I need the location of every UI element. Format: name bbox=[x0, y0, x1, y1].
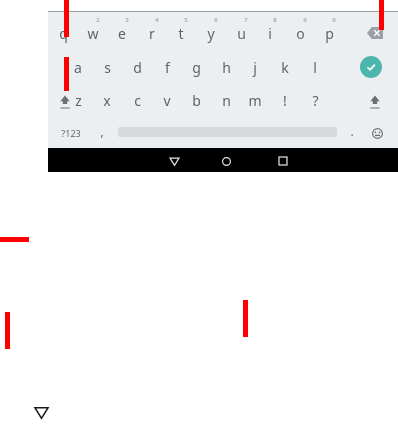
button[interactable]: n bbox=[212, 90, 240, 110]
button[interactable]: Back bbox=[167, 154, 181, 168]
staticText: s bbox=[104, 58, 111, 77]
staticText: 7 bbox=[244, 16, 248, 24]
staticText: 2 bbox=[96, 16, 100, 24]
button[interactable]: i bbox=[256, 23, 284, 43]
staticText: ! bbox=[283, 91, 287, 110]
button[interactable]: g bbox=[182, 57, 210, 77]
button[interactable]: Enter bbox=[360, 56, 382, 78]
staticText: l bbox=[313, 58, 317, 77]
staticText: o bbox=[296, 24, 305, 43]
staticText: 9 bbox=[303, 16, 307, 24]
button[interactable]: m bbox=[241, 90, 269, 110]
staticText: 5 bbox=[184, 16, 188, 24]
staticText: , bbox=[100, 123, 104, 139]
button[interactable]: y bbox=[197, 23, 225, 43]
staticText: y bbox=[207, 24, 215, 43]
staticText: 1 bbox=[66, 16, 70, 24]
staticText: 8 bbox=[273, 16, 277, 24]
button[interactable]: o bbox=[286, 23, 314, 43]
staticText: u bbox=[237, 24, 246, 43]
button[interactable]: ?123 bbox=[54, 124, 88, 142]
button[interactable]: v bbox=[153, 90, 181, 110]
staticText: v bbox=[163, 91, 171, 110]
button[interactable]: l bbox=[301, 57, 329, 77]
button[interactable]: Recents bbox=[276, 154, 290, 168]
staticText: a bbox=[74, 58, 82, 77]
staticText: d bbox=[133, 58, 142, 77]
button[interactable]: d bbox=[123, 57, 151, 77]
button[interactable]: Back bbox=[33, 404, 49, 420]
button[interactable]: Backspace bbox=[361, 21, 389, 45]
staticText: c bbox=[134, 91, 141, 110]
staticText: ? bbox=[312, 91, 319, 110]
staticText: m bbox=[248, 91, 262, 110]
staticText: f bbox=[165, 58, 170, 77]
staticText: ?123 bbox=[61, 127, 81, 139]
staticText: h bbox=[222, 58, 231, 77]
button[interactable]: u bbox=[227, 23, 255, 43]
staticText: 3 bbox=[125, 16, 129, 24]
button[interactable]: Shift bbox=[56, 92, 74, 112]
button[interactable]: t bbox=[167, 23, 195, 43]
button[interactable]: q bbox=[49, 23, 77, 43]
staticText: g bbox=[192, 58, 201, 77]
staticText: e bbox=[118, 24, 126, 43]
staticText: z bbox=[75, 91, 82, 110]
button[interactable]: s bbox=[93, 57, 121, 77]
staticText: i bbox=[268, 24, 272, 43]
button[interactable]: Emoji bbox=[368, 124, 386, 142]
staticText: w bbox=[87, 24, 99, 43]
staticText: x bbox=[103, 91, 111, 110]
button[interactable]: z bbox=[64, 90, 92, 110]
staticText: t bbox=[178, 24, 184, 43]
button[interactable]: ! bbox=[271, 90, 299, 110]
staticText: r bbox=[149, 24, 155, 43]
staticText: . bbox=[350, 123, 354, 139]
button[interactable]: . bbox=[338, 121, 366, 141]
button[interactable]: w bbox=[79, 23, 107, 43]
staticText: j bbox=[253, 58, 257, 77]
staticText: b bbox=[192, 91, 201, 110]
button[interactable]: , bbox=[88, 121, 116, 141]
button[interactable]: x bbox=[93, 90, 121, 110]
button[interactable]: c bbox=[123, 90, 151, 110]
staticText: k bbox=[281, 58, 289, 77]
staticText: n bbox=[222, 91, 231, 110]
staticText: 4 bbox=[155, 16, 159, 24]
staticText: 6 bbox=[214, 16, 218, 24]
button[interactable]: b bbox=[182, 90, 210, 110]
button[interactable]: r bbox=[138, 23, 166, 43]
staticText: 0 bbox=[332, 16, 336, 24]
staticText: q bbox=[59, 24, 68, 43]
button[interactable]: e bbox=[108, 23, 136, 43]
button[interactable]: f bbox=[153, 57, 181, 77]
button[interactable]: ? bbox=[301, 90, 329, 110]
button[interactable]: k bbox=[271, 57, 299, 77]
button[interactable]: Shift right bbox=[366, 92, 384, 112]
button[interactable]: Home bbox=[219, 154, 233, 168]
staticText: p bbox=[325, 24, 334, 43]
button[interactable]: h bbox=[212, 57, 240, 77]
button[interactable]: a bbox=[64, 57, 92, 77]
button[interactable]: j bbox=[241, 57, 269, 77]
button[interactable]: p bbox=[315, 23, 343, 43]
